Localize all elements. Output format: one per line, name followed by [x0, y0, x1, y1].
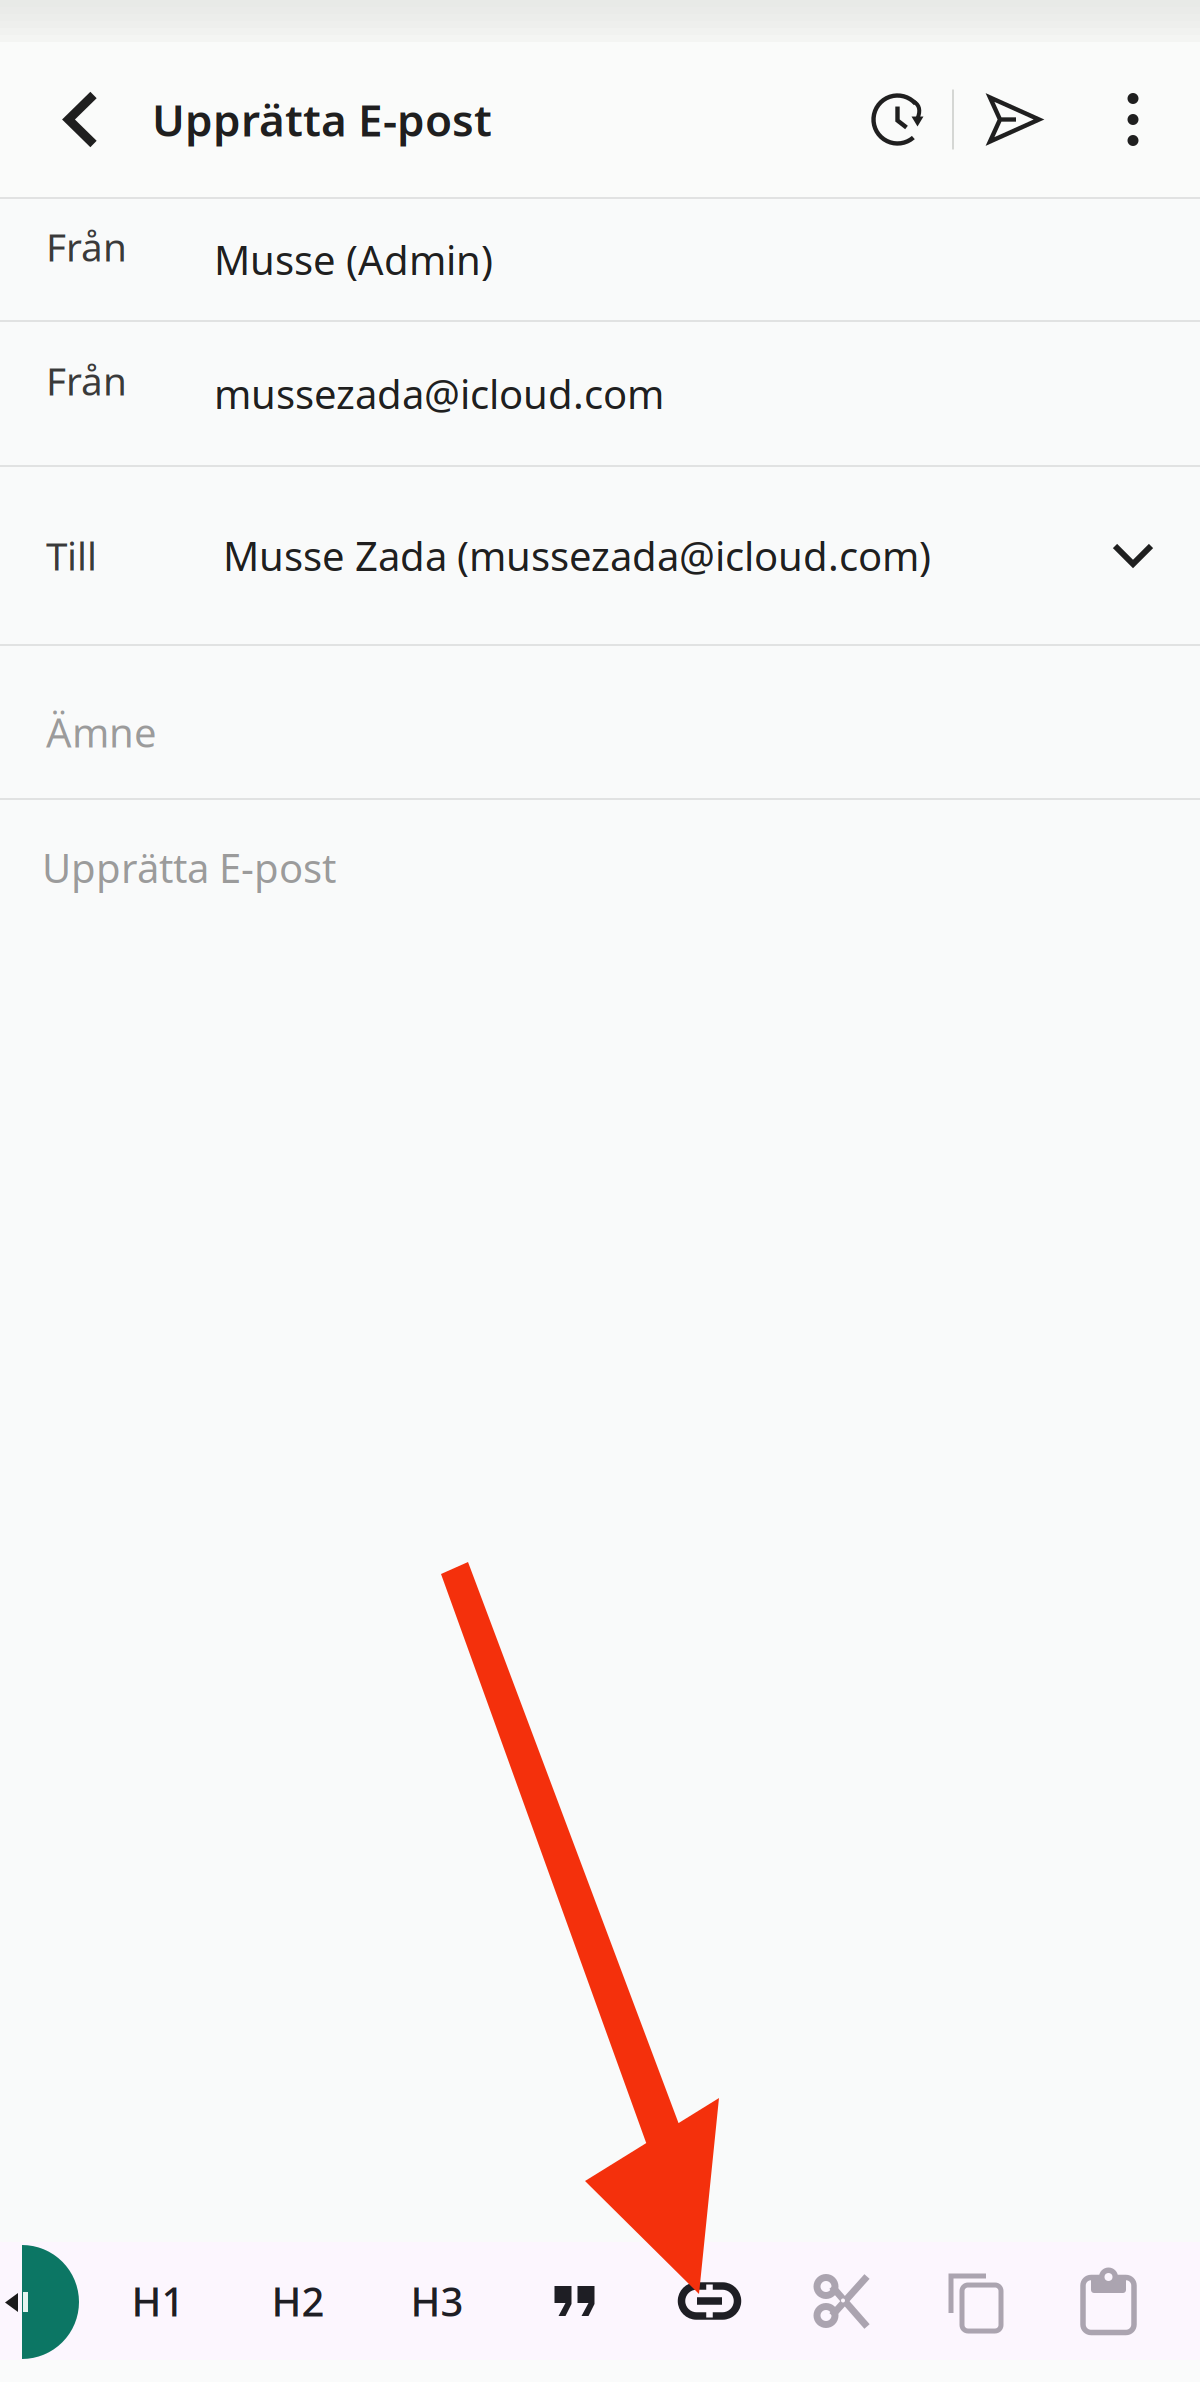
button[interactable]: Schedule send	[849, 42, 952, 197]
button[interactable]: Från	[0, 322, 1200, 465]
staticText: H2	[271, 2274, 324, 2327]
staticText: H3	[410, 2274, 463, 2327]
button[interactable]: Heading 3	[368, 2242, 506, 2360]
button[interactable]: Till	[0, 467, 1200, 644]
button[interactable]: Från	[0, 199, 1200, 320]
staticText: mussezada@icloud.com	[214, 367, 664, 420]
button[interactable]: Ämne	[0, 646, 1200, 798]
staticText: Från	[46, 355, 127, 406]
button[interactable]: Send	[954, 42, 1074, 197]
staticText: Ämne	[46, 705, 157, 758]
button[interactable]: Cut	[776, 2242, 909, 2360]
button[interactable]: Insert link	[643, 2242, 776, 2360]
button[interactable]: Paste	[1043, 2242, 1174, 2360]
button[interactable]: Back	[0, 42, 136, 197]
button[interactable]: Heading 1	[0, 2242, 228, 2360]
staticText: Upprätta E-post	[152, 90, 492, 149]
staticText: Upprätta E-post	[42, 841, 336, 894]
staticText: Musse (Admin)	[214, 233, 493, 286]
button[interactable]: Upprätta E-post	[0, 800, 1200, 894]
staticText: Musse Zada (mussezada@icloud.com)	[223, 529, 931, 582]
button[interactable]: Heading 2	[228, 2242, 368, 2360]
staticText: Från	[46, 221, 127, 272]
staticText: Till	[46, 530, 97, 581]
button[interactable]: Copy	[909, 2242, 1043, 2360]
button[interactable]: Block quote	[506, 2242, 643, 2360]
button[interactable]: More options	[1074, 42, 1192, 197]
staticText: H1	[131, 2274, 184, 2327]
